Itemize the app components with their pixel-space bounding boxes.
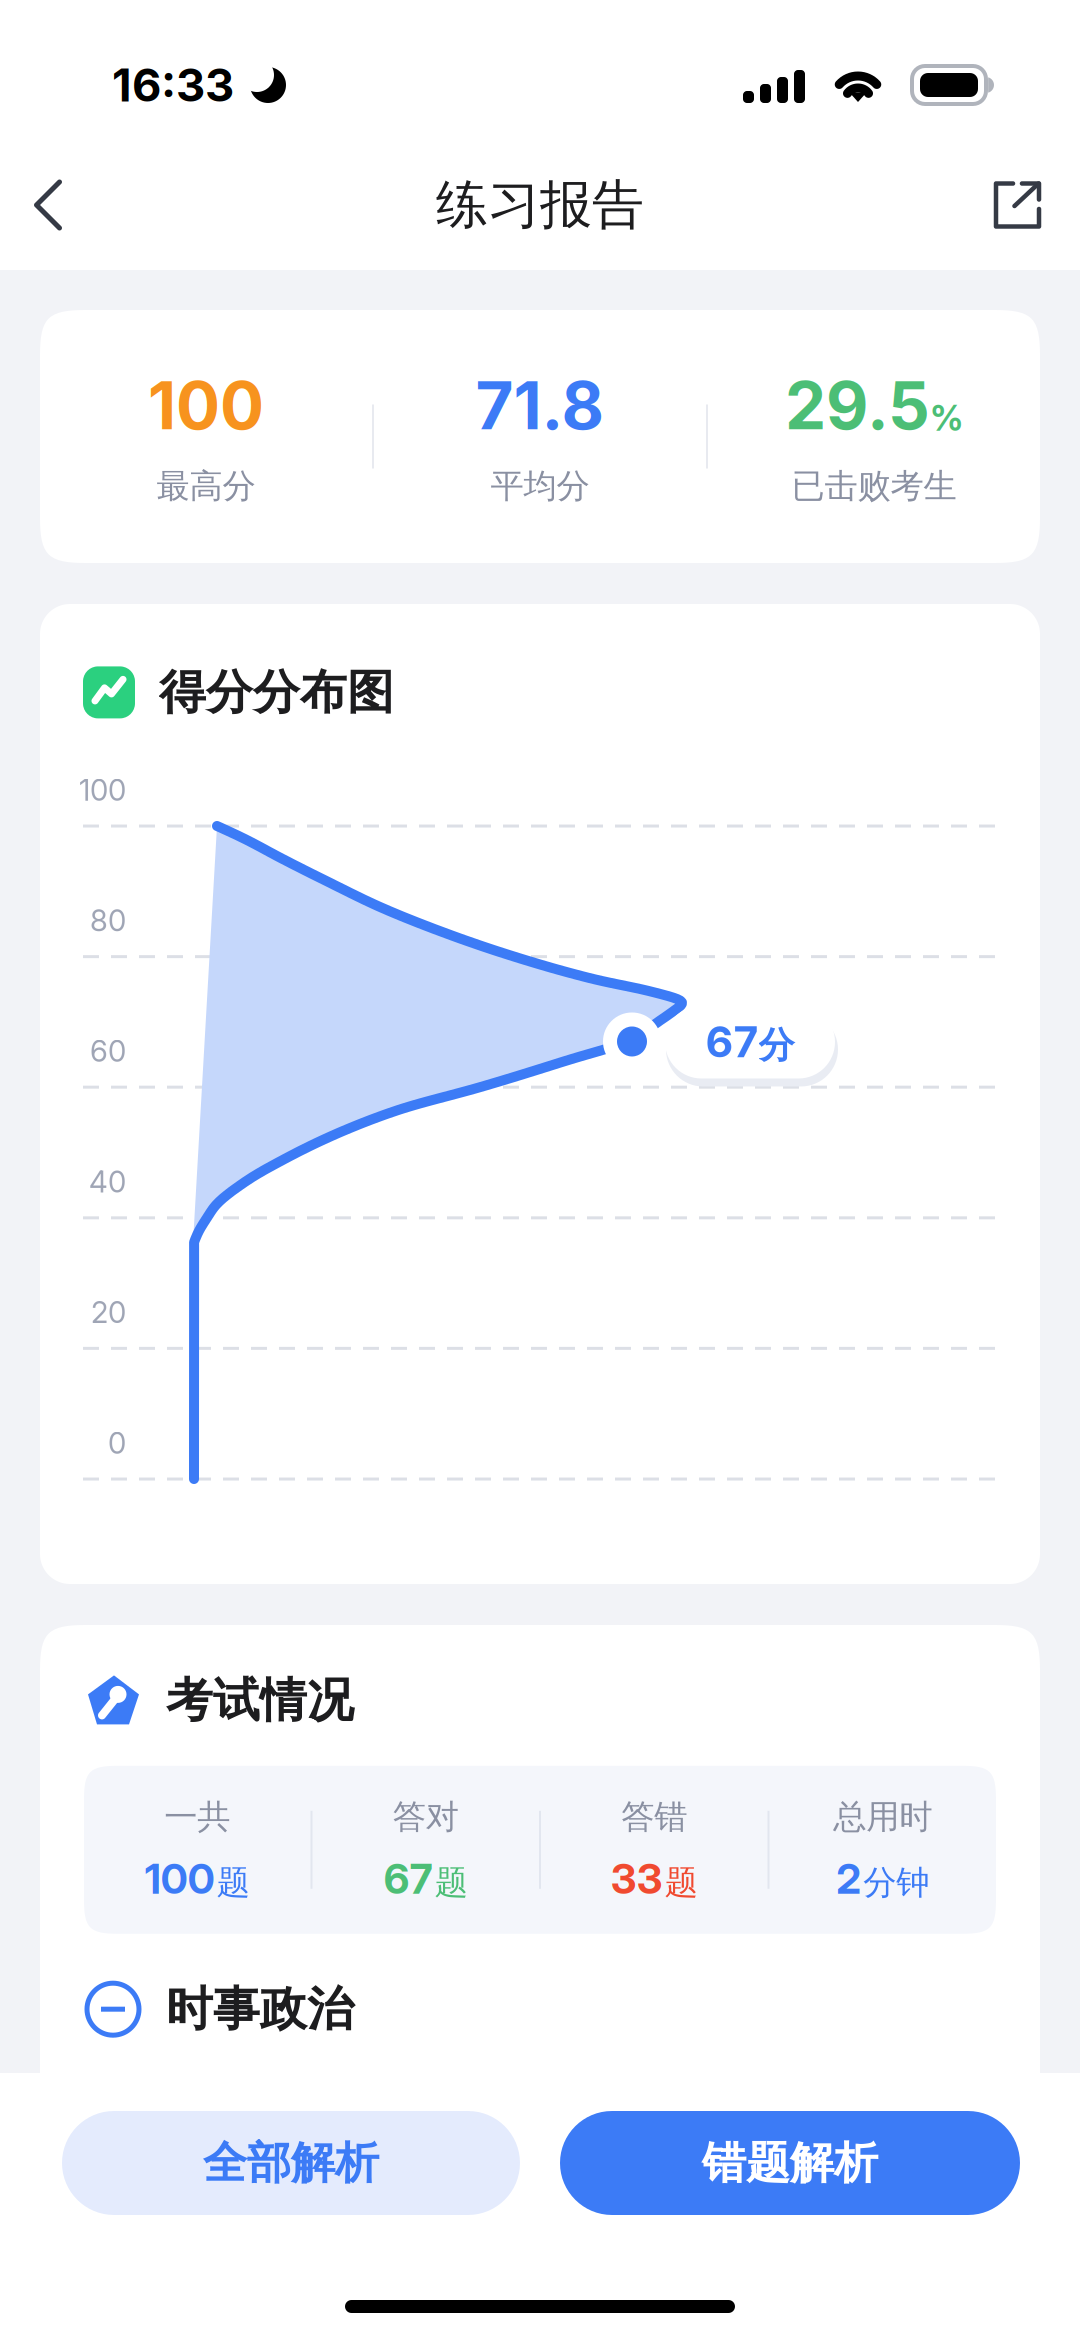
staticText: 100	[145, 1854, 215, 1904]
staticText: 已击败考生	[791, 465, 956, 507]
staticText: 分钟	[863, 1862, 929, 1904]
staticText: 80	[90, 903, 126, 938]
staticText: 20	[91, 1295, 126, 1330]
staticText: 得分分布图	[159, 663, 394, 722]
staticText: 答错	[621, 1796, 687, 1838]
staticText: 40	[89, 1164, 126, 1200]
staticText: 全部解析	[203, 2135, 379, 2191]
staticText: 总用时	[833, 1796, 932, 1838]
staticText: 最高分	[156, 465, 255, 507]
staticText: 71.8	[475, 366, 604, 445]
staticText: 时事政治	[166, 1980, 354, 2039]
staticText: 练习报告	[436, 172, 644, 238]
staticText: 33	[611, 1854, 663, 1904]
staticText: 100	[148, 366, 264, 445]
staticText: 67	[705, 1016, 758, 1068]
button[interactable]: 全部解析	[62, 2111, 520, 2215]
staticText: %	[930, 397, 963, 439]
button[interactable]: 时事政治	[40, 1934, 1040, 2054]
staticText: 题	[665, 1862, 698, 1904]
staticText: 0	[108, 1425, 126, 1461]
staticText: 一共	[164, 1796, 230, 1838]
button[interactable]: 返回	[0, 137, 96, 273]
staticText: 平均分	[490, 465, 589, 507]
staticText: 题	[217, 1862, 250, 1904]
staticText: 考试情况	[166, 1671, 354, 1730]
staticText: 60	[90, 1033, 126, 1069]
staticText: 29.5	[785, 366, 930, 445]
staticText: 2	[836, 1854, 861, 1904]
staticText: 分	[758, 1023, 794, 1068]
button[interactable]: 分享	[955, 137, 1080, 273]
staticText: 16:33	[112, 58, 234, 112]
staticText: 答对	[393, 1796, 459, 1838]
button[interactable]: 错题解析	[560, 2111, 1020, 2215]
staticText: 错题解析	[702, 2135, 878, 2191]
staticText: 67	[384, 1854, 433, 1904]
staticText: 100	[79, 772, 126, 808]
staticText: 题	[435, 1862, 468, 1904]
